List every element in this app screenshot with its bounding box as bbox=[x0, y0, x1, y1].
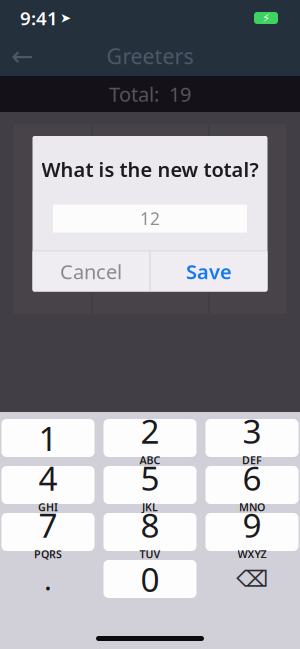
staticText: + bbox=[47, 207, 58, 231]
button[interactable]: 2 bbox=[103, 419, 196, 457]
staticText: 2 bbox=[140, 409, 159, 453]
button[interactable]: Decimal point bbox=[1, 560, 94, 598]
button[interactable]: 8 bbox=[103, 513, 196, 551]
staticText: 3 bbox=[242, 409, 261, 453]
staticText: 9 bbox=[242, 503, 261, 547]
staticText: ➤ bbox=[60, 10, 71, 25]
staticText: Greeters bbox=[106, 42, 193, 70]
staticText: PQRS bbox=[34, 547, 62, 561]
staticText: ⌫ bbox=[236, 566, 268, 592]
staticText: ABC bbox=[139, 453, 160, 467]
staticText: 10:30 AM bbox=[96, 202, 205, 236]
staticText: Cancel bbox=[60, 258, 122, 285]
staticText: TUV bbox=[139, 547, 160, 561]
button[interactable]: Delete bbox=[205, 560, 298, 598]
staticText: Total: 19 bbox=[109, 81, 191, 107]
button[interactable]: Save bbox=[150, 252, 267, 292]
staticText: 8 bbox=[140, 503, 159, 547]
staticText: 4 bbox=[38, 456, 57, 500]
staticText: MNO bbox=[239, 500, 265, 514]
staticText: Save bbox=[186, 258, 232, 285]
button[interactable]: 1 bbox=[1, 419, 94, 457]
staticText: WXYZ bbox=[237, 547, 266, 561]
staticText: 5 bbox=[140, 456, 159, 500]
button[interactable]: 5 bbox=[103, 466, 196, 504]
button[interactable]: Cancel bbox=[32, 252, 149, 292]
staticText: JKL bbox=[142, 500, 158, 514]
staticText: 6 bbox=[242, 456, 261, 500]
button[interactable]: 4 bbox=[1, 466, 94, 504]
button[interactable]: 9 bbox=[205, 513, 298, 551]
staticText: 7 bbox=[38, 503, 57, 547]
button[interactable]: 0 bbox=[103, 560, 196, 598]
staticText: 12 bbox=[140, 207, 160, 230]
staticText: DEF bbox=[242, 453, 262, 467]
button[interactable]: 6 bbox=[205, 466, 298, 504]
staticText: 0 bbox=[140, 557, 159, 601]
staticText: GHI bbox=[38, 500, 58, 514]
staticText: 9:41 bbox=[20, 6, 58, 30]
staticText: What is the new total? bbox=[41, 156, 258, 183]
staticText: 1 bbox=[38, 416, 57, 460]
button[interactable]: 7 bbox=[1, 513, 94, 551]
staticText: ← bbox=[11, 41, 33, 71]
button[interactable]: 3 bbox=[205, 419, 298, 457]
staticText: ⚡︎ bbox=[262, 11, 270, 25]
button[interactable]: Back bbox=[0, 36, 44, 76]
staticText: . bbox=[44, 559, 52, 598]
